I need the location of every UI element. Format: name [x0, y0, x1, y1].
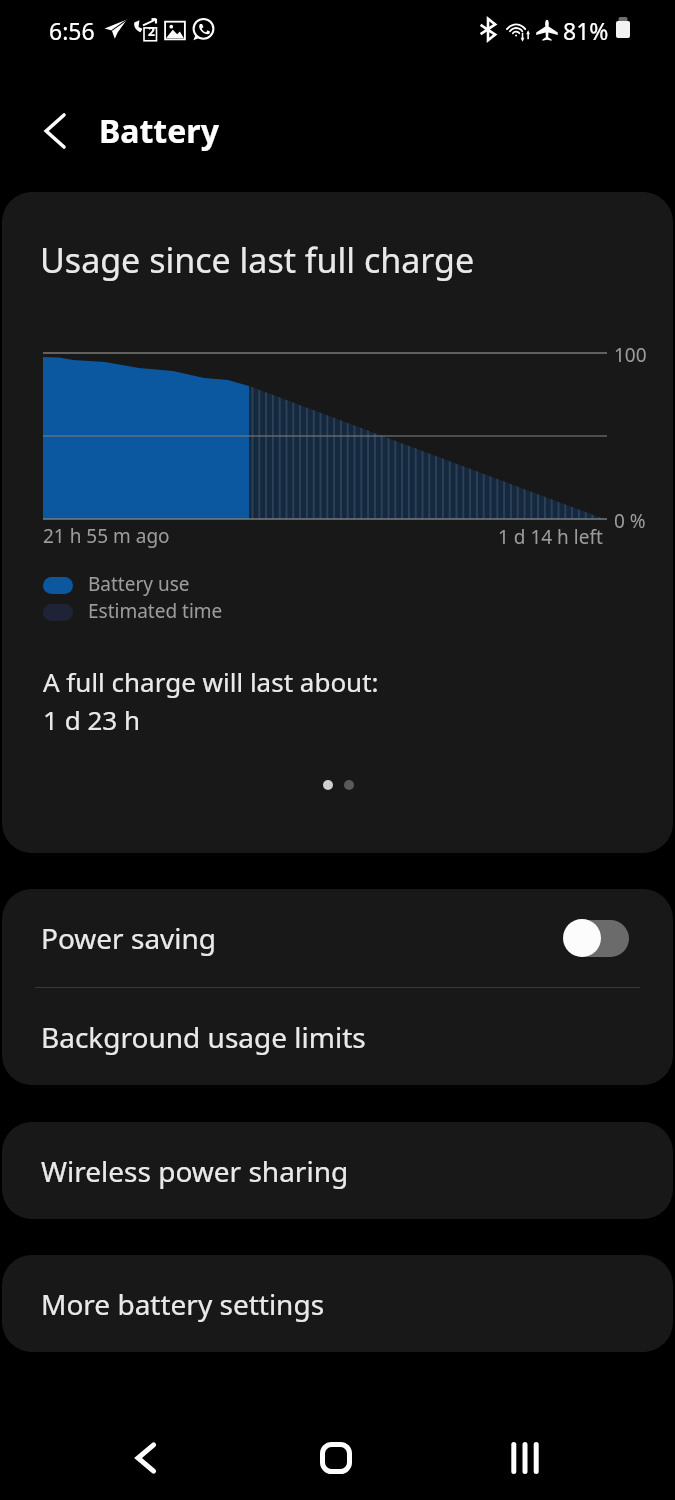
button[interactable]: Wireless power sharing	[2, 1122, 673, 1219]
staticText: Power saving	[41, 919, 217, 957]
staticText: 1 d 14 h left	[498, 524, 603, 550]
staticText: Usage since last full charge	[40, 237, 475, 283]
button[interactable]: Back	[96, 1421, 196, 1495]
staticText: Battery	[99, 109, 219, 153]
button[interactable]: Back	[26, 92, 84, 170]
staticText: 0 %	[614, 508, 646, 534]
staticText: 81%	[563, 15, 609, 46]
staticText: Background usage limits	[41, 1018, 366, 1056]
staticText: Wireless power sharing	[41, 1152, 349, 1190]
staticText: More battery settings	[41, 1285, 325, 1323]
staticText: 21 h 55 m ago	[43, 523, 170, 549]
staticText: 100	[614, 342, 647, 368]
staticText: Battery use	[88, 571, 190, 597]
staticText: 6:56	[49, 15, 95, 46]
staticText: A full charge will last about:	[43, 664, 379, 699]
staticText: 1 d 23 h	[43, 702, 140, 737]
staticText: 2	[148, 23, 155, 39]
button[interactable]: More battery settings	[2, 1255, 673, 1352]
button[interactable]: Recents	[475, 1421, 575, 1495]
button[interactable]: Power saving	[2, 889, 673, 987]
button[interactable]: Home	[286, 1421, 386, 1495]
staticText: Estimated time	[88, 598, 223, 624]
button[interactable]: Power saving toggle	[563, 918, 629, 958]
button[interactable]: Background usage limits	[2, 988, 673, 1085]
